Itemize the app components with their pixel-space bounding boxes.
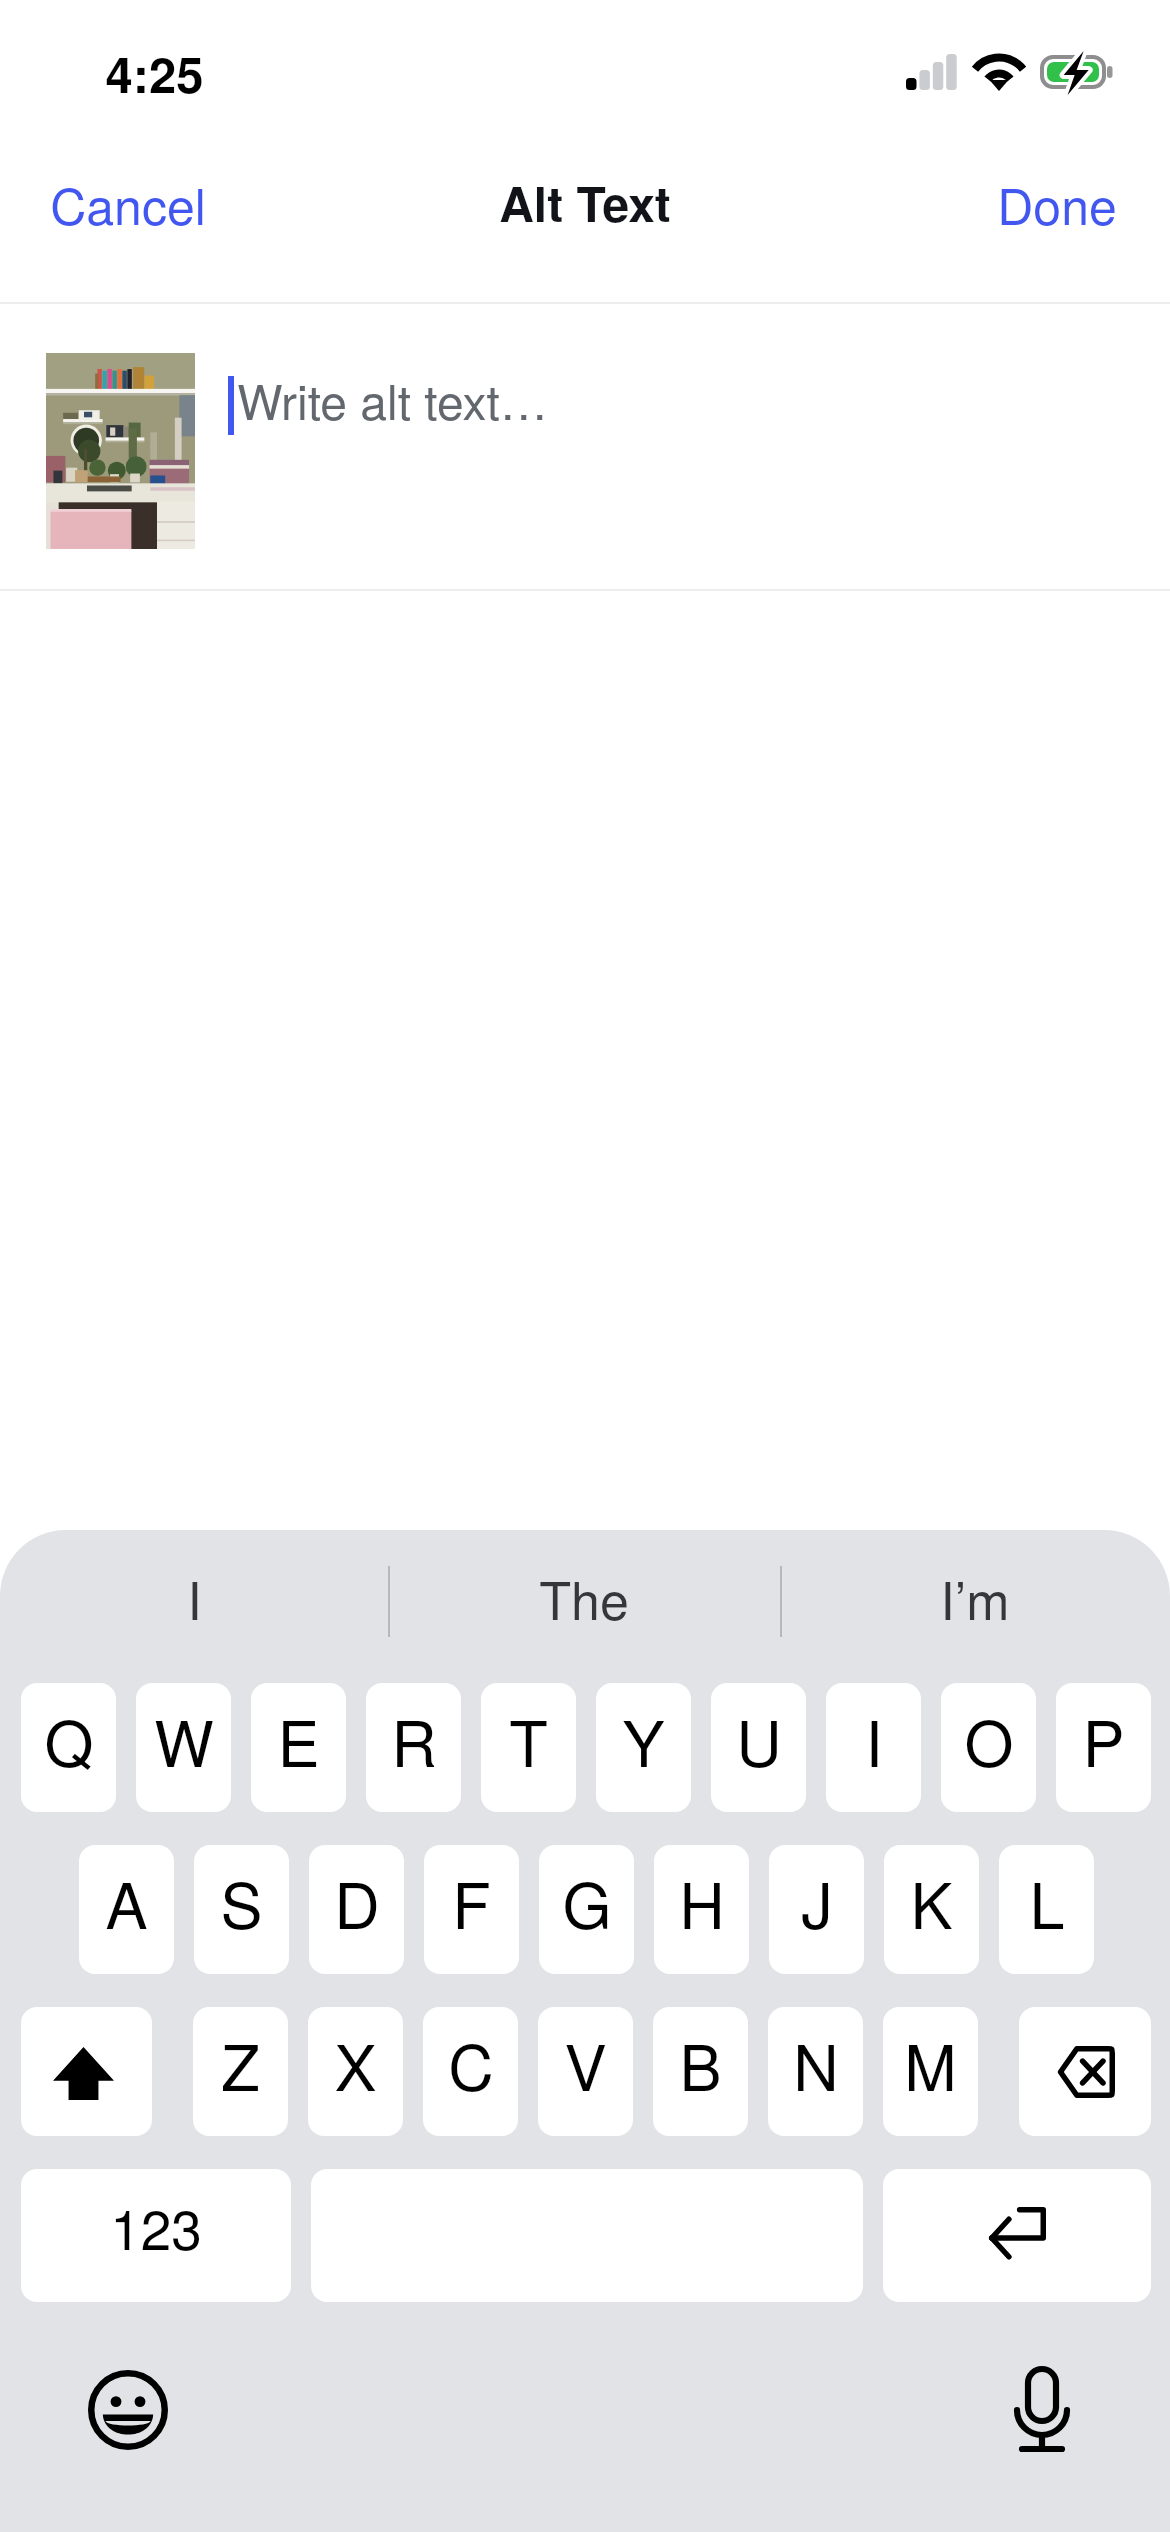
staticText: S [220,1857,263,1947]
staticText: N [793,2019,839,2109]
button[interactable]: Shift [21,2007,152,2136]
staticText: Alt Text [499,168,671,237]
staticText: J [801,1857,833,1947]
staticText: E [277,1695,320,1785]
button[interactable]: E [251,1683,346,1812]
button[interactable]: A [79,1845,174,1974]
staticText: A [105,1857,148,1947]
staticText: M [904,2019,957,2109]
staticText: The [539,1560,629,1634]
staticText: 123 [110,2187,202,2266]
button[interactable]: I’m [780,1530,1170,1683]
button[interactable]: D [309,1845,404,1974]
staticText: G [562,1857,612,1947]
button[interactable]: H [654,1845,749,1974]
button[interactable]: O [941,1683,1036,1812]
staticText: Y [622,1695,665,1785]
button[interactable]: Q [21,1683,116,1812]
button[interactable]: I [826,1683,921,1812]
button[interactable]: S [194,1845,289,1974]
button[interactable]: J [769,1845,864,1974]
staticText: Write alt text… [237,365,548,434]
button[interactable]: Z [193,2007,288,2136]
button[interactable]: C [423,2007,518,2136]
staticText: V [564,2019,607,2109]
button[interactable]: Backspace [1019,2007,1151,2136]
staticText: U [736,1695,782,1785]
button[interactable]: Done [965,140,1149,268]
button[interactable]: P [1056,1683,1151,1812]
button[interactable]: W [136,1683,231,1812]
staticText: Q [44,1695,94,1785]
button[interactable]: R [366,1683,461,1812]
staticText: R [391,1695,437,1785]
staticText: I [865,1695,883,1785]
staticText: T [509,1695,548,1785]
staticText: K [910,1857,953,1947]
staticText: W [154,1695,214,1785]
button[interactable]: I [0,1530,388,1683]
staticText: X [334,2019,377,2109]
staticText: C [448,2019,494,2109]
button[interactable]: Dictation [982,2350,1102,2470]
staticText: L [1029,1857,1065,1947]
button[interactable]: B [653,2007,748,2136]
staticText: 4:25 [105,38,204,108]
staticText: Cancel [50,168,206,240]
button[interactable]: U [711,1683,806,1812]
staticText: F [452,1857,491,1947]
button[interactable]: X [308,2007,403,2136]
button[interactable]: 123 [21,2169,291,2302]
button[interactable]: F [424,1845,519,1974]
button[interactable]: G [539,1845,634,1974]
button[interactable]: L [999,1845,1094,1974]
button[interactable]: Return [883,2169,1151,2302]
staticText: B [679,2019,722,2109]
button[interactable]: Emoji keyboard [68,2350,188,2470]
staticText: D [334,1857,380,1947]
staticText: I’m [940,1560,1010,1634]
button[interactable]: V [538,2007,633,2136]
button[interactable]: K [884,1845,979,1974]
staticText: Done [997,168,1117,240]
staticText: P [1082,1695,1125,1785]
button[interactable]: Y [596,1683,691,1812]
staticText: H [679,1857,725,1947]
staticText: O [964,1695,1014,1785]
button[interactable]: Write alt text… [208,340,1108,470]
staticText: Z [221,2019,260,2109]
button[interactable]: Cancel [18,140,238,268]
button[interactable]: N [768,2007,863,2136]
button[interactable]: M [883,2007,978,2136]
staticText: I [187,1560,202,1634]
button[interactable]: T [481,1683,576,1812]
button[interactable]: The [388,1530,780,1683]
